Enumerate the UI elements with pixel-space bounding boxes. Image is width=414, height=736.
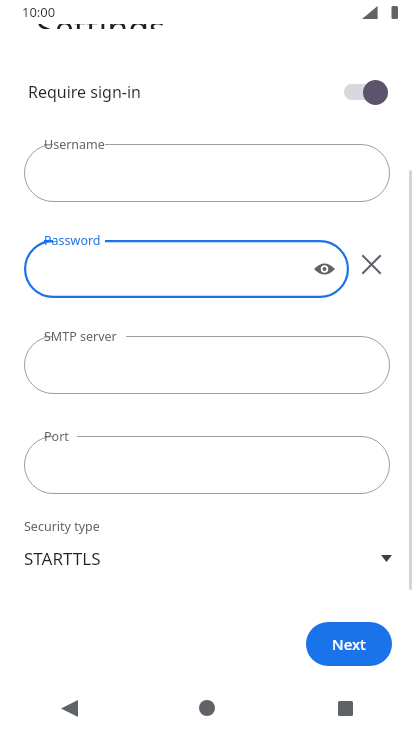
button[interactable]: Show password (307, 252, 341, 286)
button[interactable]: Recent apps (276, 680, 414, 736)
staticText: Username (44, 136, 105, 153)
button[interactable]: Username (24, 134, 390, 202)
button[interactable]: Password (24, 230, 349, 298)
button[interactable]: Require sign-in (0, 70, 414, 114)
staticText: Password (44, 232, 101, 249)
staticText: Security type (24, 518, 100, 535)
staticText: STARTTLS (24, 547, 101, 570)
staticText: Next (332, 634, 366, 654)
staticText: Port (44, 428, 69, 445)
button[interactable]: Next (306, 622, 392, 666)
staticText: SMTP server (44, 328, 117, 345)
staticText: Require sign-in (28, 81, 141, 103)
button[interactable]: Home (138, 680, 276, 736)
button[interactable]: Port (24, 426, 390, 494)
button[interactable]: Clear password (349, 242, 393, 286)
staticText: 10:00 (22, 3, 56, 21)
staticText: Settings (36, 24, 166, 29)
button[interactable]: Back (0, 680, 138, 736)
button[interactable]: Security type (0, 518, 414, 570)
button[interactable]: SMTP server (24, 326, 390, 394)
button[interactable]: Require sign-in (340, 77, 394, 107)
